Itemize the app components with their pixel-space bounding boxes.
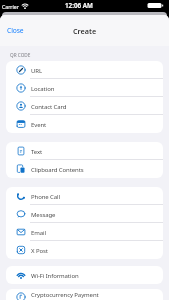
button[interactable]: Event	[6, 115, 163, 133]
staticText: Phone Call	[31, 193, 60, 201]
button[interactable]: URL	[6, 61, 163, 79]
staticText: Contact Card	[31, 103, 67, 111]
button[interactable]: Wi-Fi Information	[6, 266, 163, 284]
staticText: QR CODE	[10, 52, 31, 58]
button[interactable]: Cryptocurrency Payment	[6, 289, 163, 300]
staticText: Event	[31, 121, 47, 129]
staticText: Create	[73, 26, 97, 36]
staticText: Location	[31, 85, 55, 93]
button[interactable]: Contact Card	[6, 97, 163, 115]
staticText: Text	[31, 148, 43, 156]
staticText: Carrier	[2, 3, 19, 10]
button[interactable]: X Post	[6, 241, 163, 259]
button[interactable]: Message	[6, 205, 163, 223]
staticText: Email	[31, 229, 46, 237]
button[interactable]: Phone Call	[6, 187, 163, 205]
staticText: Clipboard Contents	[31, 166, 84, 174]
button[interactable]: Text	[6, 142, 163, 160]
button[interactable]: Clipboard Contents	[6, 160, 163, 178]
staticText: 12:06 AM	[65, 1, 93, 10]
staticText: URL	[31, 67, 42, 75]
staticText: Close	[7, 26, 24, 35]
button[interactable]: Email	[6, 223, 163, 241]
button[interactable]: Location	[6, 79, 163, 97]
button[interactable]: Close	[7, 26, 24, 35]
staticText: Message	[31, 211, 56, 219]
staticText: Cryptocurrency Payment	[31, 291, 99, 299]
staticText: X Post	[31, 247, 48, 255]
staticText: Wi-Fi Information	[31, 272, 79, 280]
